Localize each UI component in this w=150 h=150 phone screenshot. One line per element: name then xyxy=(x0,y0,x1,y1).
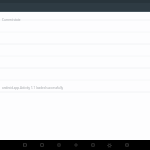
button[interactable]: Settings xyxy=(101,140,118,150)
button[interactable]: Keyboard xyxy=(118,140,135,150)
button[interactable]: android.app.Activity 1.1 loaded successf… xyxy=(0,84,150,92)
staticText: android.app.Activity 1.1 loaded successf… xyxy=(2,86,64,90)
button[interactable]: Menu xyxy=(67,140,84,150)
button[interactable]: Recent apps xyxy=(50,140,67,150)
button[interactable]: Back xyxy=(16,140,33,150)
staticText: Current state xyxy=(2,18,21,22)
button[interactable]: Current state xyxy=(0,14,150,26)
button[interactable]: Home xyxy=(33,140,50,150)
button[interactable]: Screenshot xyxy=(84,140,101,150)
